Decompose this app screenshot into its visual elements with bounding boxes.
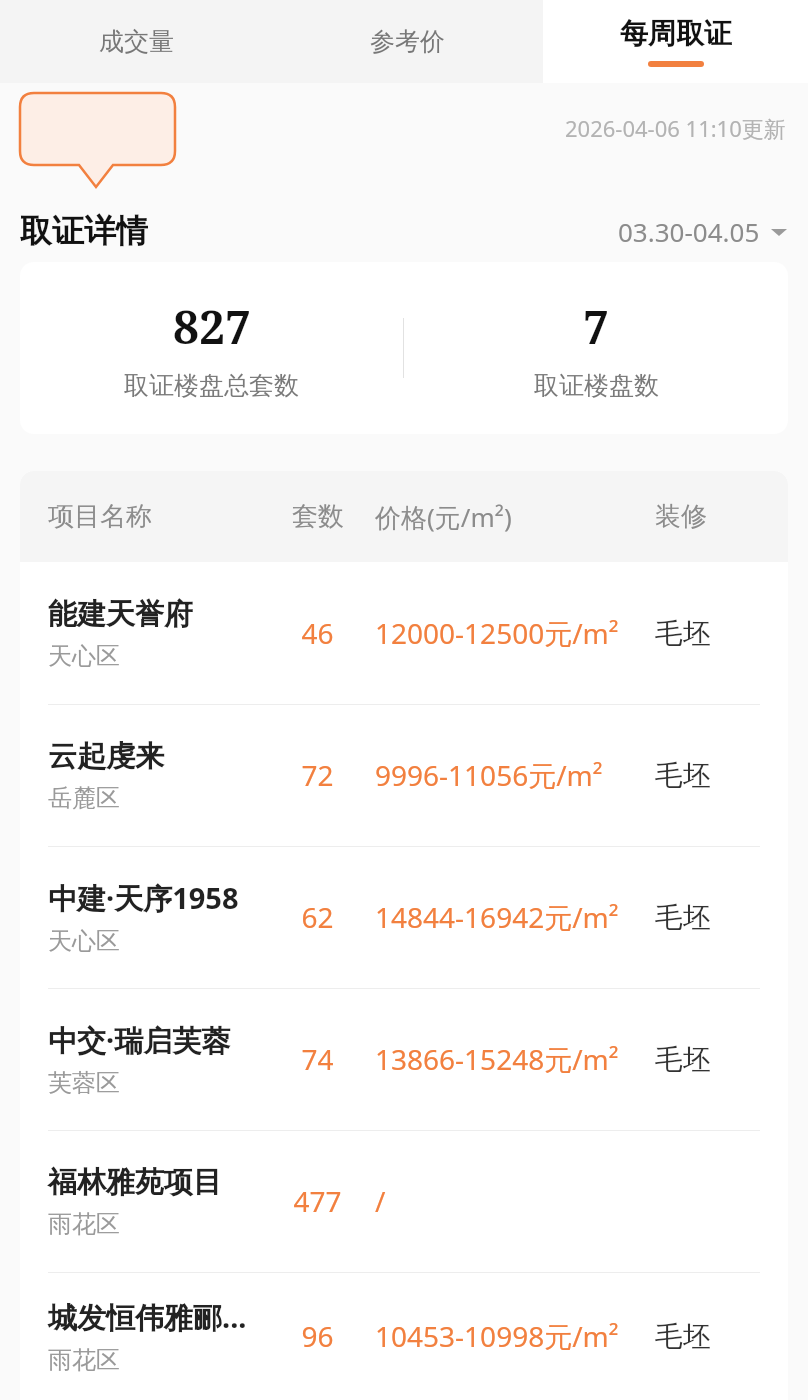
staticText: 14844-16942元/m² <box>375 898 619 936</box>
staticText: 天心区 <box>48 926 120 956</box>
staticText: 74 <box>301 1040 334 1078</box>
staticText: 城发恒伟雅郦... <box>48 1297 247 1337</box>
staticText: 毛坯 <box>655 758 711 793</box>
button[interactable]: 中建·天序1958 <box>20 846 788 988</box>
button[interactable]: 能建天誉府 <box>20 562 788 704</box>
staticText: 天心区 <box>48 641 120 671</box>
staticText: 取证楼盘总套数 <box>124 370 299 401</box>
staticText: 芙蓉区 <box>48 1068 120 1098</box>
staticText: 中建·天序1958 <box>48 878 239 918</box>
staticText: 价格(元/m²) <box>375 499 512 535</box>
staticText: 96 <box>301 1317 334 1355</box>
staticText: 能建天誉府 <box>48 596 193 633</box>
staticText: 03.30-04.05 <box>618 214 760 249</box>
staticText: / <box>375 1182 386 1220</box>
button[interactable]: 城发恒伟雅郦... <box>20 1272 788 1400</box>
staticText: 取证详情 <box>20 211 148 251</box>
staticText: 套数 <box>292 500 344 533</box>
staticText: 项目名称 <box>48 500 152 533</box>
staticText: 毛坯 <box>655 1319 711 1354</box>
staticText: 参考价 <box>370 26 445 57</box>
staticText: 毛坯 <box>655 900 711 935</box>
staticText: 云起虔来 <box>48 738 164 775</box>
staticText: 62 <box>301 898 334 936</box>
button[interactable]: 每周取证 <box>20 93 175 165</box>
staticText: 2026-04-06 11:10更新 <box>565 113 786 143</box>
button[interactable]: 每周取证 <box>543 0 808 83</box>
staticText: 12000-12500元/m² <box>375 614 619 652</box>
staticText: 毛坯 <box>655 616 711 651</box>
button[interactable]: 云起虔来 <box>20 704 788 846</box>
staticText: 取证楼盘数 <box>534 370 659 401</box>
staticText: 装修 <box>655 500 707 533</box>
staticText: 9996-11056元/m² <box>375 756 603 794</box>
button[interactable]: 福林雅苑项目 <box>20 1130 788 1272</box>
staticText: 岳麓区 <box>48 783 120 813</box>
staticText: 72 <box>301 756 334 794</box>
button[interactable]: 03.30-04.05 <box>618 214 788 249</box>
staticText: 10453-10998元/m² <box>375 1317 619 1355</box>
staticText: 毛坯 <box>655 1042 711 1077</box>
staticText: 成交量 <box>99 26 174 57</box>
button[interactable]: 中交·瑞启芙蓉 <box>20 988 788 1130</box>
staticText: 中交·瑞启芙蓉 <box>48 1020 231 1060</box>
button[interactable]: 成交量 <box>0 0 272 83</box>
staticText: 46 <box>301 614 334 652</box>
staticText: 雨花区 <box>48 1345 120 1375</box>
staticText: 7 <box>583 295 609 358</box>
staticText: 每周取证 <box>620 16 732 51</box>
staticText: 13866-15248元/m² <box>375 1040 619 1078</box>
staticText: 雨花区 <box>48 1209 120 1239</box>
staticText: 477 <box>293 1182 342 1220</box>
button[interactable]: 参考价 <box>272 0 543 83</box>
staticText: 827 <box>173 295 251 358</box>
staticText: 福林雅苑项目 <box>48 1164 222 1201</box>
